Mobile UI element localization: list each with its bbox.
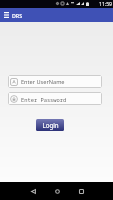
button[interactable]: Recent apps — [69, 182, 93, 200]
button[interactable]: Back — [21, 182, 45, 200]
button[interactable]: Home — [45, 182, 69, 200]
staticText: DRS — [12, 12, 23, 19]
staticText: 11:59 — [99, 1, 113, 8]
button[interactable]: Open navigation menu — [0, 8, 11, 22]
staticText: Enter UserName — [21, 78, 65, 86]
button[interactable]: Login — [36, 119, 64, 131]
button[interactable]: Enter Password — [8, 92, 102, 105]
staticText: Login — [42, 121, 59, 129]
button[interactable]: Enter UserName — [8, 75, 102, 88]
staticText: Enter Password — [21, 96, 67, 103]
